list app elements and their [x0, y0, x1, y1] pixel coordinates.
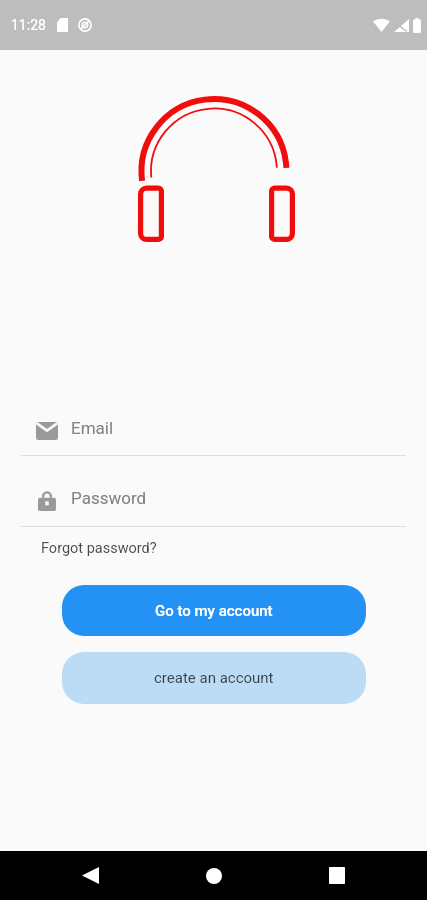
button[interactable]: Recent apps: [305, 851, 369, 900]
button[interactable]: create an account: [62, 652, 366, 704]
staticText: Go to my account: [155, 602, 273, 620]
button[interactable]: Home: [182, 851, 246, 900]
staticText: create an account: [154, 669, 274, 687]
button[interactable]: Back: [58, 851, 122, 900]
button[interactable]: Forgot password?: [41, 540, 157, 557]
staticText: Password: [71, 488, 147, 508]
button[interactable]: Go to my account: [62, 585, 366, 636]
staticText: Email: [71, 418, 114, 438]
staticText: 11:28: [11, 17, 46, 33]
